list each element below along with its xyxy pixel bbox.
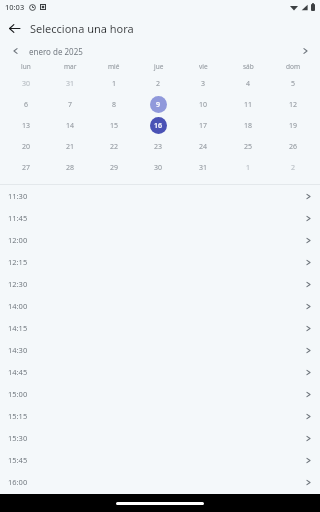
button[interactable]: 15 (92, 115, 136, 136)
staticText: 22 (110, 142, 119, 152)
button[interactable]: 27 (4, 157, 48, 178)
button[interactable]: 14:30 (0, 339, 320, 361)
button[interactable]: 14 (48, 115, 92, 136)
button[interactable]: 2 (271, 157, 316, 178)
staticText: 12:00 (8, 235, 28, 245)
staticText: 27 (22, 163, 31, 173)
staticText: 6 (24, 100, 29, 110)
button[interactable]: 4 (226, 73, 271, 94)
staticText: 1 (246, 163, 251, 173)
button[interactable]: 14:45 (0, 361, 320, 383)
button[interactable]: 15:45 (0, 449, 320, 471)
staticText: 29 (110, 163, 119, 173)
button[interactable]: 1 (92, 73, 136, 94)
staticText: 11 (244, 100, 253, 110)
button[interactable]: 12:00 (0, 229, 320, 251)
button[interactable]: 20 (4, 136, 48, 157)
button[interactable]: 15:15 (0, 405, 320, 427)
button[interactable]: 11:30 (0, 185, 320, 207)
staticText: 13 (22, 121, 31, 131)
staticText: 16:00 (8, 477, 28, 487)
staticText: dom (286, 62, 301, 71)
staticText: 12:15 (8, 257, 28, 267)
button[interactable]: 14:00 (0, 295, 320, 317)
staticText: 9 (156, 100, 161, 110)
staticText: 2 (156, 79, 161, 89)
button[interactable]: 12 (271, 94, 316, 115)
staticText: 28 (66, 163, 75, 173)
staticText: 23 (154, 142, 163, 152)
button[interactable]: Mes siguiente (297, 43, 313, 59)
button[interactable]: 30 (136, 157, 181, 178)
button[interactable]: 23 (136, 136, 181, 157)
staticText: 17 (199, 121, 208, 131)
staticText: 15:15 (8, 411, 28, 421)
staticText: 25 (244, 142, 253, 152)
button[interactable]: 21 (48, 136, 92, 157)
staticText: 14:15 (8, 323, 28, 333)
button[interactable]: 18 (226, 115, 271, 136)
button[interactable]: 2 (136, 73, 181, 94)
button[interactable]: 16 (136, 115, 181, 136)
staticText: 30 (154, 163, 163, 173)
staticText: 3 (201, 79, 206, 89)
staticText: 11:45 (8, 213, 28, 223)
button[interactable]: 1 (226, 157, 271, 178)
button[interactable]: 13 (4, 115, 48, 136)
button[interactable]: 31 (181, 157, 226, 178)
staticText: 12:30 (8, 279, 28, 289)
button[interactable]: 11:45 (0, 207, 320, 229)
button[interactable]: 31 (48, 73, 92, 94)
button[interactable]: 30 (4, 73, 48, 94)
staticText: 16 (154, 121, 163, 131)
staticText: 18 (244, 121, 253, 131)
button[interactable]: 15:00 (0, 383, 320, 405)
button[interactable]: 22 (92, 136, 136, 157)
staticText: 24 (199, 142, 208, 152)
button[interactable]: 29 (92, 157, 136, 178)
button[interactable]: Atrás (0, 14, 28, 42)
button[interactable]: 6 (4, 94, 48, 115)
staticText: 30 (22, 79, 31, 89)
staticText: 2 (291, 163, 296, 173)
staticText: 15 (110, 121, 119, 131)
button[interactable]: 10 (181, 94, 226, 115)
staticText: 10 (199, 100, 208, 110)
button[interactable]: Mes anterior (7, 43, 23, 59)
staticText: mar (64, 62, 77, 71)
button[interactable]: 8 (92, 94, 136, 115)
button[interactable]: 3 (181, 73, 226, 94)
button[interactable]: 12:30 (0, 273, 320, 295)
staticText: 31 (199, 163, 208, 173)
button[interactable]: 17 (181, 115, 226, 136)
staticText: 15:30 (8, 433, 28, 443)
staticText: 7 (68, 100, 73, 110)
button[interactable]: 24 (181, 136, 226, 157)
staticText: 15:00 (8, 389, 28, 399)
staticText: 19 (289, 121, 298, 131)
staticText: 15:45 (8, 455, 28, 465)
staticText: lun (21, 62, 31, 71)
button[interactable]: 12:15 (0, 251, 320, 273)
button[interactable]: 5 (271, 73, 316, 94)
staticText: jue (154, 62, 164, 71)
staticText: Selecciona una hora (30, 21, 134, 36)
button[interactable]: 26 (271, 136, 316, 157)
button[interactable]: 28 (48, 157, 92, 178)
button[interactable]: 15:30 (0, 427, 320, 449)
button[interactable]: 9 (136, 94, 181, 115)
staticText: 1 (112, 79, 117, 89)
button[interactable]: 25 (226, 136, 271, 157)
button[interactable]: 14:15 (0, 317, 320, 339)
button[interactable]: 7 (48, 94, 92, 115)
button[interactable]: 16:00 (0, 471, 320, 493)
staticText: 11:30 (8, 191, 28, 201)
staticText: enero de 2025 (29, 46, 83, 57)
staticText: 14 (66, 121, 75, 131)
button[interactable]: 16:15 (0, 493, 320, 512)
button[interactable]: 19 (271, 115, 316, 136)
staticText: 21 (66, 142, 75, 152)
button[interactable]: 11 (226, 94, 271, 115)
staticText: 26 (289, 142, 298, 152)
